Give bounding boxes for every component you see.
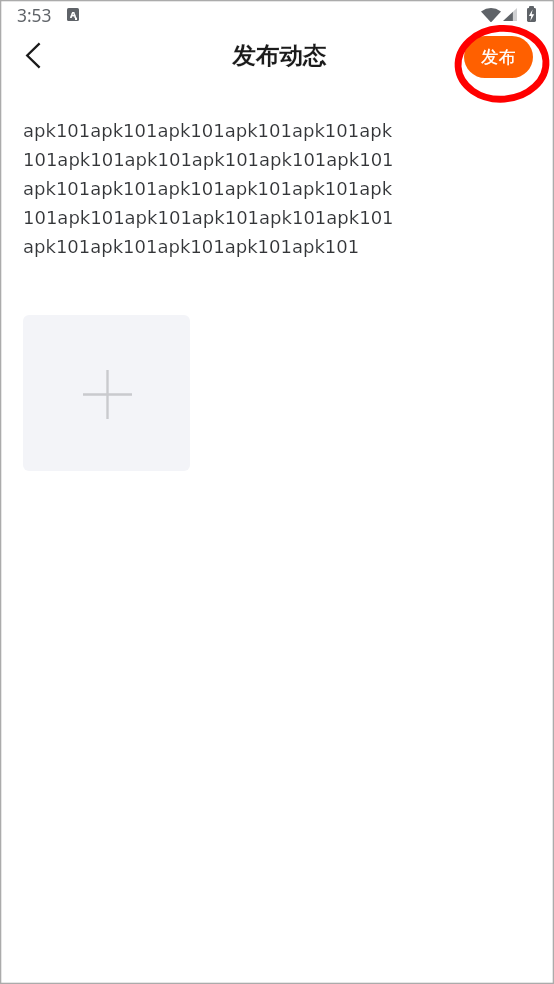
staticText: 发布 [481, 46, 516, 68]
button[interactable]: Add photo [23, 315, 190, 471]
staticText: 发布动态 [232, 41, 326, 71]
staticText: A [70, 8, 77, 21]
staticText: apk101apk101apk101apk101apk101apk101apk1… [23, 120, 399, 257]
staticText: 3:53 [17, 3, 52, 27]
button[interactable]: 发布 [464, 36, 533, 78]
button[interactable]: Back [9, 31, 57, 79]
